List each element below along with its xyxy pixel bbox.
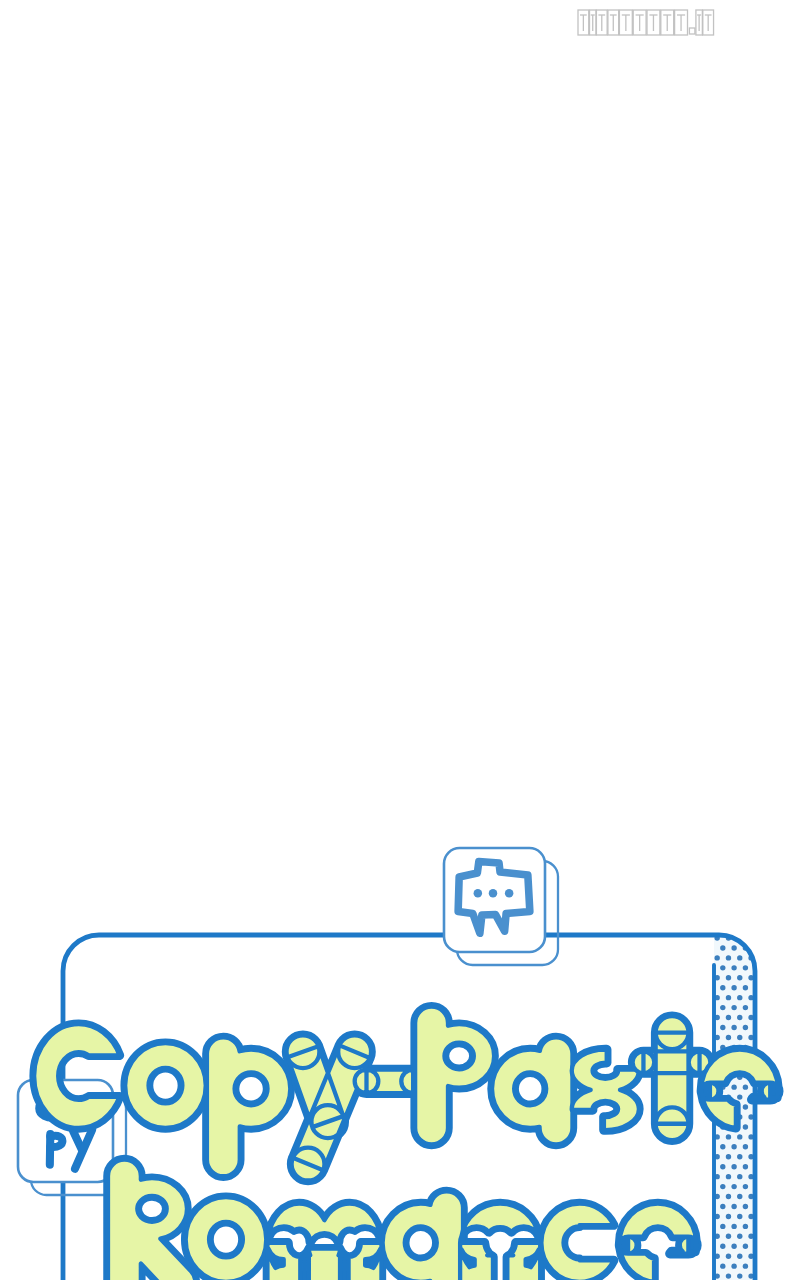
button[interactable]: Copy-Paste Romance cover page — [0, 0, 800, 1280]
